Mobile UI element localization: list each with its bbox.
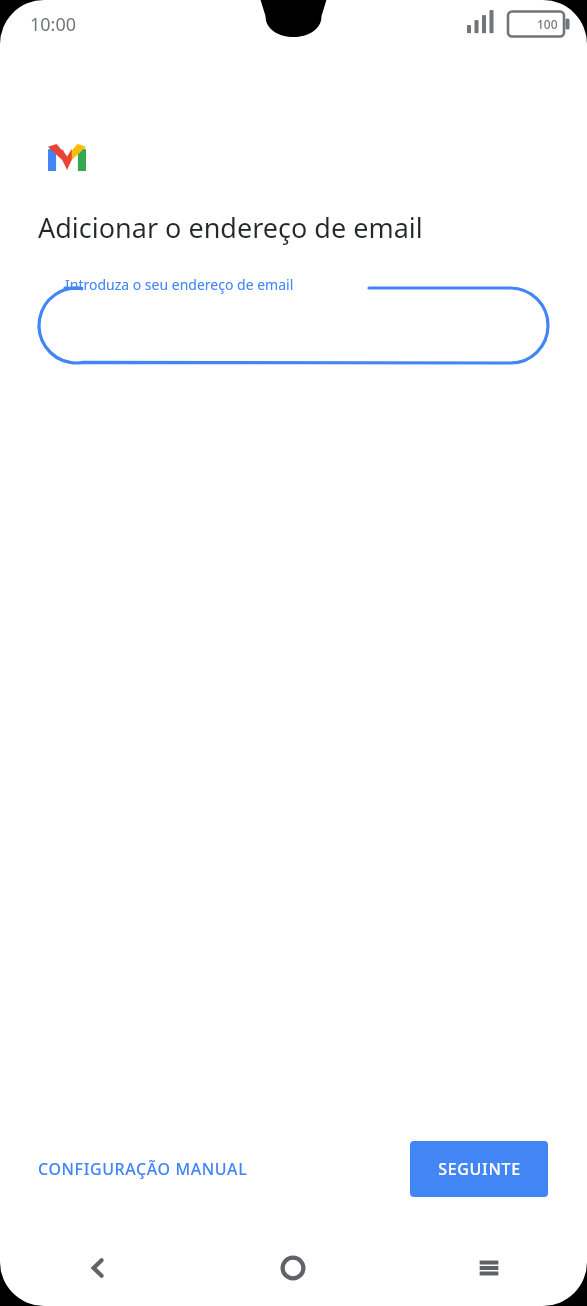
staticText: Introduza o seu endereço de email xyxy=(65,275,294,294)
button[interactable]: SEGUINTE xyxy=(410,1141,548,1197)
staticText: SEGUINTE xyxy=(438,1158,521,1180)
button[interactable]: Recent apps xyxy=(391,1230,587,1306)
button[interactable]: Home xyxy=(195,1230,391,1306)
staticText: Adicionar o endereço de email xyxy=(38,209,423,246)
button[interactable]: Back xyxy=(0,1230,195,1306)
staticText: 10:00 xyxy=(30,12,77,37)
staticText: 100 xyxy=(537,16,558,32)
button[interactable]: CONFIGURAÇÃO MANUAL xyxy=(38,1148,248,1190)
button[interactable]: Introduza o seu endereço de email xyxy=(39,277,548,363)
staticText: CONFIGURAÇÃO MANUAL xyxy=(38,1158,248,1180)
